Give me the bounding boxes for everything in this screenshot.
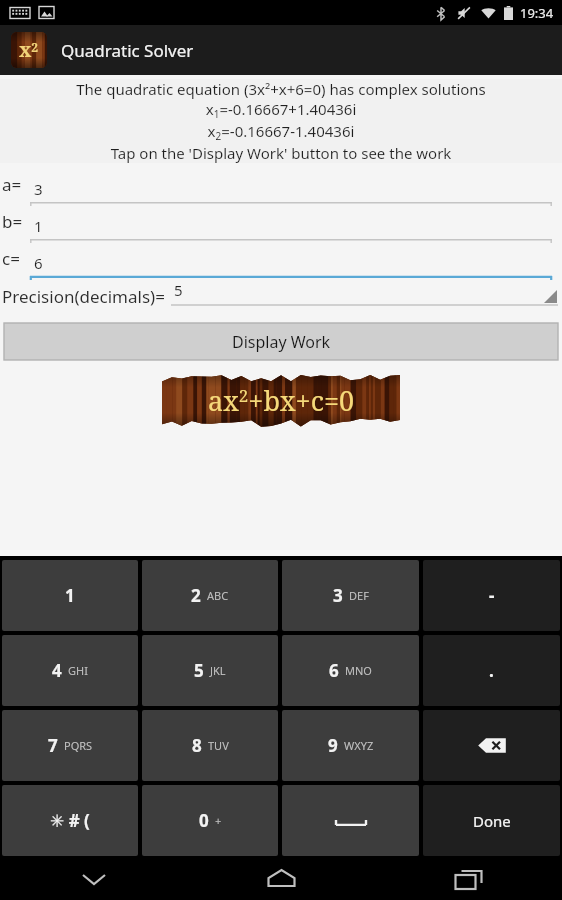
staticText: 6: [34, 253, 43, 273]
staticText: 6: [329, 659, 339, 682]
button[interactable]: Space: [282, 785, 419, 856]
button[interactable]: 7: [2, 710, 138, 781]
staticText: 8: [192, 734, 202, 757]
staticText: x1=-0.16667+1.40436i: [6, 99, 556, 121]
staticText: ABC: [207, 588, 229, 603]
staticText: 0: [199, 809, 209, 832]
button[interactable]: Precision(decimals)=: [0, 280, 562, 316]
button[interactable]: .: [423, 635, 560, 706]
staticText: 4: [52, 659, 62, 682]
button[interactable]: 0: [142, 785, 278, 856]
button[interactable]: -: [423, 560, 560, 631]
staticText: Quadratic Solver: [61, 39, 194, 62]
staticText: ✳ # (: [50, 809, 90, 832]
staticText: 3: [34, 179, 43, 199]
button[interactable]: 1: [2, 560, 138, 631]
button[interactable]: 4: [2, 635, 138, 706]
staticText: The quadratic equation (3x²+x+6=0) has c…: [6, 79, 556, 99]
button[interactable]: 8: [142, 710, 278, 781]
staticText: 5: [174, 280, 183, 300]
staticText: ax2+bx+c=0: [208, 382, 355, 419]
button[interactable]: Delete: [423, 710, 560, 781]
staticText: c=: [2, 247, 20, 270]
staticText: a=: [2, 173, 22, 196]
staticText: b=: [2, 210, 23, 233]
button[interactable]: 3: [282, 560, 419, 631]
staticText: .: [489, 659, 494, 682]
staticText: x2: [19, 37, 39, 63]
staticText: Tap on the 'Display Work' button to see …: [6, 143, 556, 163]
button[interactable]: 9: [282, 710, 419, 781]
button[interactable]: b=: [0, 206, 562, 243]
staticText: 3: [333, 584, 343, 607]
staticText: DEF: [349, 588, 369, 603]
button[interactable]: App icon: [11, 32, 47, 68]
staticText: Display Work: [232, 331, 331, 353]
button[interactable]: Recents: [375, 858, 562, 900]
staticText: GHI: [68, 663, 88, 678]
button[interactable]: c=: [0, 243, 562, 280]
button[interactable]: a=: [0, 169, 562, 206]
staticText: PQRS: [64, 738, 93, 753]
button[interactable]: Done: [423, 785, 560, 856]
staticText: MNO: [345, 663, 372, 678]
staticText: +: [215, 813, 222, 828]
button[interactable]: 6: [282, 635, 419, 706]
staticText: Done: [473, 811, 511, 831]
staticText: 1: [34, 216, 43, 236]
button[interactable]: 5: [142, 635, 278, 706]
button[interactable]: Display Work: [4, 323, 558, 360]
staticText: 2: [191, 584, 201, 607]
button[interactable]: 2: [142, 560, 278, 631]
staticText: 9: [328, 734, 338, 757]
staticText: JKL: [210, 663, 226, 678]
staticText: WXYZ: [344, 738, 374, 753]
staticText: 7: [48, 734, 58, 757]
button[interactable]: Hide keyboard: [0, 858, 188, 900]
button[interactable]: Home: [188, 858, 375, 900]
staticText: 1: [65, 584, 75, 607]
staticText: 5: [194, 659, 204, 682]
staticText: TUV: [208, 738, 229, 753]
staticText: -: [489, 584, 495, 607]
staticText: Precision(decimals)=: [2, 285, 165, 308]
button[interactable]: ✳ # (: [2, 785, 138, 856]
staticText: 19:34: [520, 4, 554, 22]
staticText: x2=-0.16667-1.40436i: [6, 121, 556, 143]
